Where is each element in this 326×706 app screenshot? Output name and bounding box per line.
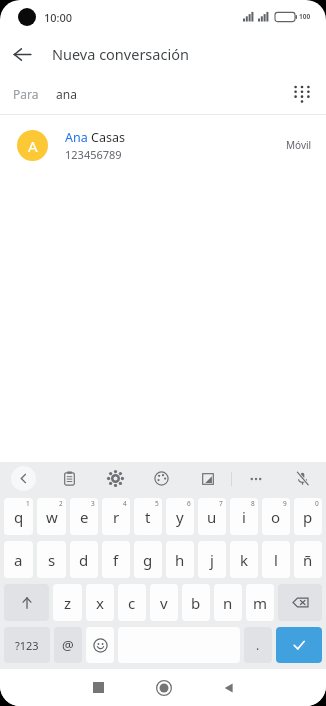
button[interactable]: Dialpad	[282, 74, 322, 114]
button[interactable]: o	[262, 498, 290, 535]
button[interactable]: g	[134, 541, 162, 578]
button[interactable]: Recents	[66, 669, 131, 706]
button[interactable]: x	[86, 584, 114, 621]
button[interactable]: Theme	[138, 462, 184, 495]
staticText: ana	[56, 86, 77, 102]
staticText: h	[175, 550, 185, 570]
button[interactable]: @	[54, 627, 82, 663]
button[interactable]: j	[198, 541, 226, 578]
staticText: i	[242, 507, 246, 527]
button[interactable]: s	[37, 541, 66, 578]
staticText: o	[271, 507, 281, 527]
staticText: 5	[155, 499, 159, 508]
button[interactable]: h	[166, 541, 194, 578]
button[interactable]: a	[4, 541, 33, 578]
staticText: z	[64, 593, 72, 613]
staticText: j	[210, 550, 214, 570]
button[interactable]: Clipboard	[46, 462, 92, 495]
button[interactable]: e	[70, 498, 98, 535]
button[interactable]: Settings	[92, 462, 138, 495]
staticText: 0	[315, 499, 319, 508]
staticText: 3	[91, 499, 95, 508]
button[interactable]: d	[70, 541, 98, 578]
staticText: c	[128, 593, 136, 613]
staticText: 123456789	[65, 147, 122, 162]
button[interactable]: k	[230, 541, 258, 578]
staticText: 4	[123, 499, 127, 508]
button[interactable]: p	[294, 498, 322, 535]
staticText: 6	[187, 499, 191, 508]
staticText: 10:00	[44, 10, 73, 25]
staticText: Para	[13, 86, 39, 102]
button[interactable]: c	[118, 584, 146, 621]
button[interactable]: Emoji	[86, 627, 114, 663]
staticText: 1	[26, 499, 30, 508]
button[interactable]: Back	[0, 34, 44, 74]
button[interactable]: Collapse	[0, 462, 46, 495]
staticText: Ana Casas	[65, 129, 125, 146]
button[interactable]: z	[53, 584, 82, 621]
button[interactable]: Backspace	[278, 584, 322, 621]
button[interactable]: l	[262, 541, 290, 578]
staticText: l	[274, 550, 278, 570]
staticText: .	[256, 637, 260, 653]
staticText: t	[145, 507, 151, 527]
button[interactable]: Shift	[4, 584, 49, 621]
staticText: x	[96, 593, 104, 613]
button[interactable]: f	[102, 541, 130, 578]
staticText: a	[14, 550, 23, 570]
staticText: v	[160, 593, 168, 613]
staticText: 9	[283, 499, 287, 508]
staticText: k	[240, 550, 249, 570]
staticText: @	[62, 636, 74, 654]
button[interactable]: v	[150, 584, 178, 621]
staticText: u	[207, 507, 217, 527]
staticText: n	[223, 593, 233, 613]
button[interactable]: Home	[131, 669, 196, 706]
staticText: p	[303, 507, 313, 527]
button[interactable]: q	[4, 498, 33, 535]
staticText: d	[79, 550, 89, 570]
staticText: f	[113, 550, 119, 570]
staticText: y	[176, 507, 184, 527]
staticText: b	[191, 593, 201, 613]
button[interactable]: m	[246, 584, 274, 621]
button[interactable]: A	[0, 115, 326, 175]
button[interactable]: b	[182, 584, 210, 621]
button[interactable]: Back	[196, 669, 261, 706]
staticText: s	[48, 550, 56, 570]
staticText: 100	[299, 12, 311, 21]
staticText: Nueva conversación	[52, 44, 189, 64]
button[interactable]: i	[230, 498, 258, 535]
staticText: 8	[251, 499, 255, 508]
staticText: w	[46, 507, 58, 527]
button[interactable]: y	[166, 498, 194, 535]
staticText: ?123	[15, 638, 39, 653]
button[interactable]: Mic off	[279, 462, 326, 495]
staticText: e	[80, 507, 89, 527]
staticText: m	[253, 593, 268, 613]
button[interactable]: ñ	[294, 541, 322, 578]
button[interactable]: Enter	[276, 627, 322, 663]
button[interactable]: Resize	[184, 462, 231, 495]
button[interactable]: n	[214, 584, 242, 621]
staticText: 2	[59, 499, 63, 508]
button[interactable]: ?123	[4, 627, 50, 663]
staticText: 7	[219, 499, 223, 508]
button[interactable]: u	[198, 498, 226, 535]
button[interactable]: More	[232, 462, 279, 495]
staticText: Móvil	[286, 138, 312, 152]
staticText: ñ	[303, 550, 313, 570]
button[interactable]: .	[244, 627, 272, 663]
staticText: r	[113, 507, 120, 527]
staticText: A	[28, 136, 38, 156]
staticText: g	[143, 550, 153, 570]
button[interactable]: r	[102, 498, 130, 535]
button[interactable]: w	[37, 498, 66, 535]
staticText: q	[14, 507, 24, 527]
button[interactable]: t	[134, 498, 162, 535]
